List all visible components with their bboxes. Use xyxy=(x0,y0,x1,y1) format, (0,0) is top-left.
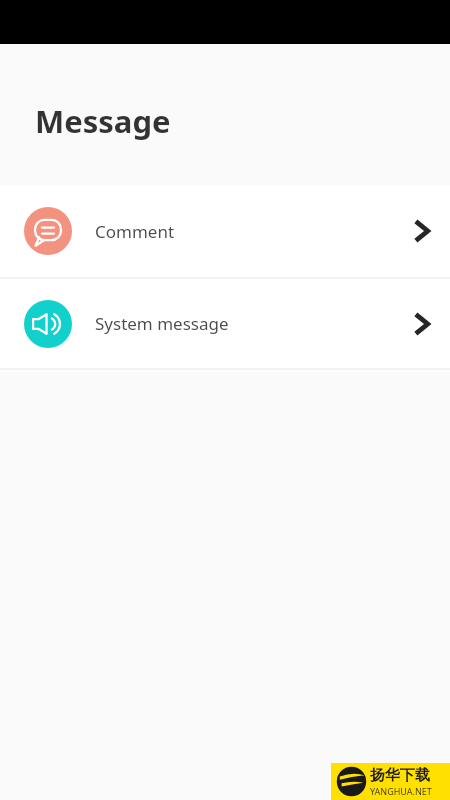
other: Open System message xyxy=(409,312,433,336)
staticText: Comment xyxy=(95,220,175,243)
other: Open Comment xyxy=(409,219,433,243)
button[interactable]: Comment xyxy=(0,185,450,277)
staticText: YANGHUA.NET xyxy=(370,785,432,797)
staticText: Message xyxy=(35,100,171,142)
staticText: 扬华下载 xyxy=(370,766,430,785)
button[interactable]: System message xyxy=(0,279,450,368)
other: Comment xyxy=(24,207,72,255)
other: System message xyxy=(24,300,72,348)
staticText: System message xyxy=(95,312,229,335)
